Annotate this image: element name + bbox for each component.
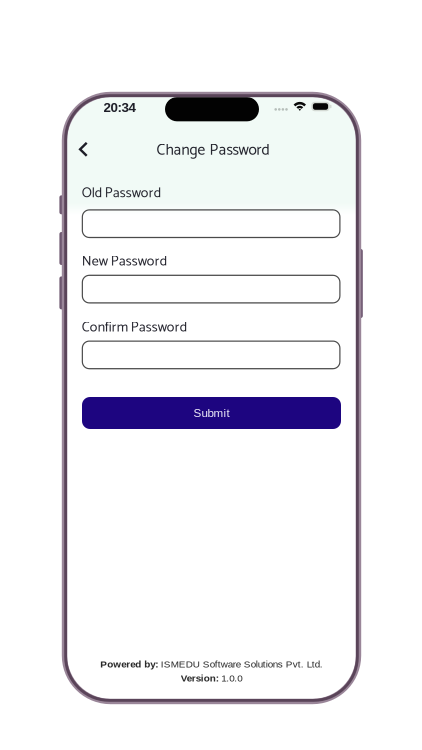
staticText: 20:34 xyxy=(103,100,135,115)
staticText: New Password xyxy=(82,250,167,273)
staticText: 1.0.0 xyxy=(221,673,242,684)
staticText: Powered by: xyxy=(100,658,158,669)
button[interactable]: Back xyxy=(67,131,99,167)
staticText: Confirm Password xyxy=(82,316,187,339)
button[interactable]: Submit xyxy=(82,397,341,429)
staticText: ISMEDU Software Solutions Pvt. Ltd. xyxy=(161,658,323,669)
staticText: Submit xyxy=(193,406,229,419)
staticText: Version: xyxy=(181,673,219,684)
staticText: Change Password xyxy=(156,138,269,163)
staticText: Old Password xyxy=(82,182,161,205)
